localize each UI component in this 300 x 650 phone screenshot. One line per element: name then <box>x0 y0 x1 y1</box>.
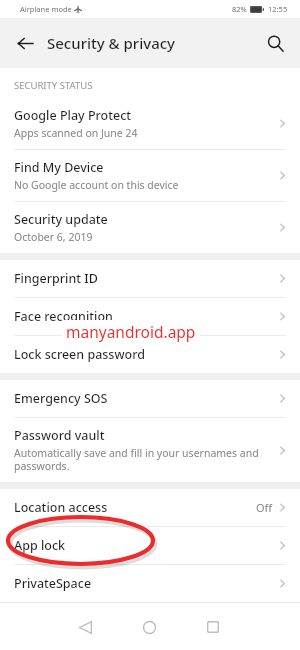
staticText: Password vault <box>14 427 105 444</box>
staticText: Google Play Protect <box>14 107 132 124</box>
button[interactable]: Security update <box>0 202 300 253</box>
button[interactable]: App lock <box>0 527 300 564</box>
button[interactable]: Emergency SOS <box>0 380 300 417</box>
button[interactable]: Fingerprint ID <box>0 260 300 297</box>
staticText: Security & privacy <box>47 33 176 53</box>
staticText: manyandroid.app <box>66 321 196 342</box>
button[interactable]: Google Play Protect <box>0 98 300 149</box>
staticText: October 6, 2019 <box>14 230 93 244</box>
button[interactable]: Back <box>70 612 100 642</box>
staticText: App lock <box>14 537 271 554</box>
staticText: No Google account on this device <box>14 178 179 192</box>
staticText: Emergency SOS <box>14 390 271 407</box>
button[interactable]: Find My Device <box>0 150 300 201</box>
staticText: 82% <box>232 4 247 14</box>
button[interactable]: Face recognition <box>0 298 300 335</box>
staticText: Lock screen password <box>14 346 271 363</box>
button[interactable]: Location access <box>0 489 300 526</box>
button[interactable]: Back <box>8 26 42 60</box>
button[interactable]: Password vault <box>0 418 300 482</box>
staticText: Face recognition <box>14 308 271 325</box>
staticText: Off <box>256 500 273 515</box>
button[interactable]: Home <box>134 612 164 642</box>
button[interactable]: PrivateSpace <box>0 565 300 602</box>
button[interactable]: Recent apps <box>198 612 228 642</box>
staticText: Find My Device <box>14 159 104 176</box>
staticText: Fingerprint ID <box>14 270 271 287</box>
staticText: Location access <box>14 499 256 516</box>
staticText: SECURITY STATUS <box>14 79 93 92</box>
staticText: Airplane mode <box>20 4 72 14</box>
staticText: Security update <box>14 211 108 228</box>
staticText: 12:55 <box>268 4 288 14</box>
staticText: Apps scanned on June 24 <box>14 126 138 140</box>
staticText: PrivateSpace <box>14 575 271 592</box>
staticText: Automatically save and fill in your user… <box>14 446 259 473</box>
button[interactable]: Lock screen password <box>0 336 300 373</box>
button[interactable]: Search <box>258 26 292 60</box>
